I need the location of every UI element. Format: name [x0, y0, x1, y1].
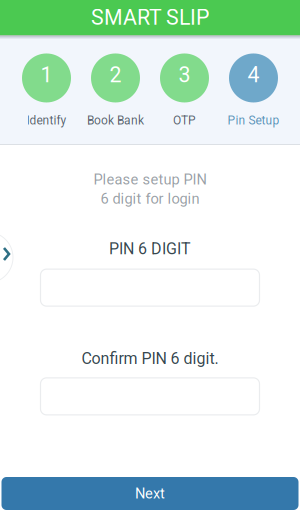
- staticText: Please setup PIN: [93, 171, 206, 188]
- staticText: 3: [178, 62, 190, 87]
- staticText: Identify: [26, 113, 66, 128]
- staticText: SMART SLIP: [91, 5, 209, 30]
- button[interactable]: Next: [1, 477, 298, 510]
- staticText: 6 digit for login: [100, 190, 199, 207]
- button[interactable]: Next step: [0, 232, 13, 283]
- staticText: Book Bank: [87, 113, 144, 128]
- staticText: PIN 6 DIGIT: [109, 239, 191, 258]
- staticText: Next: [135, 485, 165, 502]
- staticText: 1: [40, 62, 52, 87]
- staticText: 2: [109, 62, 121, 87]
- staticText: Confirm PIN 6 digit.: [81, 349, 218, 368]
- staticText: OTP: [173, 113, 196, 128]
- staticText: Pin Setup: [227, 113, 279, 128]
- staticText: 4: [247, 62, 259, 87]
